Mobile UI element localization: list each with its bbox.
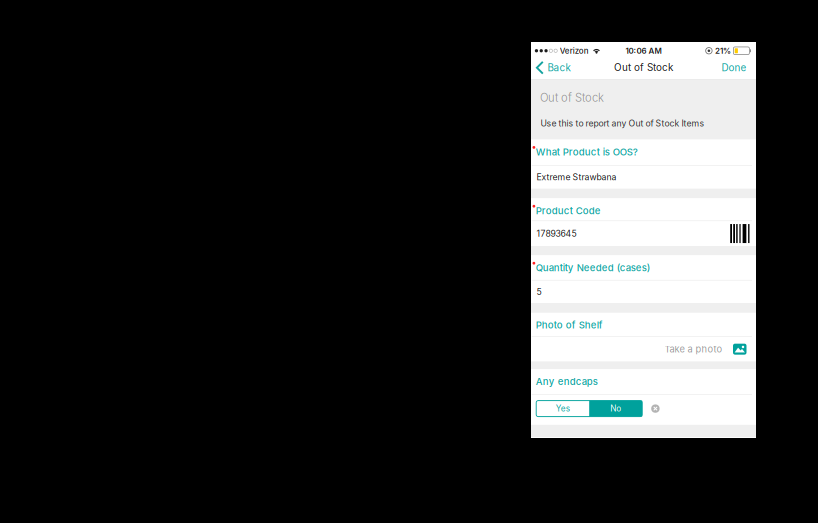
button[interactable]: Clear: [642, 401, 660, 417]
staticText: Product Code: [536, 205, 601, 216]
staticText: 21%: [715, 46, 731, 56]
button[interactable]: Back: [531, 61, 576, 75]
staticText: Out of Stock: [540, 91, 604, 104]
staticText: Extreme Strawbana: [536, 172, 616, 182]
button[interactable]: Scan barcode: [730, 224, 749, 243]
staticText: Verizon: [560, 46, 589, 56]
staticText: 5: [536, 286, 541, 297]
staticText: What Product is OOS?: [536, 146, 638, 158]
staticText: Photo of Shelf: [536, 319, 603, 331]
button[interactable]: No: [589, 401, 642, 417]
staticText: Use this to report any Out of Stock Item…: [540, 118, 704, 129]
staticText: Any endcaps: [536, 376, 598, 387]
button[interactable]: Yes: [536, 401, 589, 417]
staticText: 17893645: [536, 228, 576, 239]
staticText: Take a photo: [664, 343, 722, 355]
staticText: No: [610, 404, 621, 414]
button[interactable]: Take a photo: [531, 343, 756, 355]
staticText: 10:06 AM: [625, 46, 661, 56]
staticText: Out of Stock: [614, 61, 673, 73]
staticText: Done: [721, 62, 746, 74]
staticText: Yes: [556, 404, 570, 414]
staticText: Quantity Needed (cases): [536, 262, 651, 273]
button[interactable]: Done: [713, 61, 756, 75]
staticText: Back: [547, 62, 570, 74]
